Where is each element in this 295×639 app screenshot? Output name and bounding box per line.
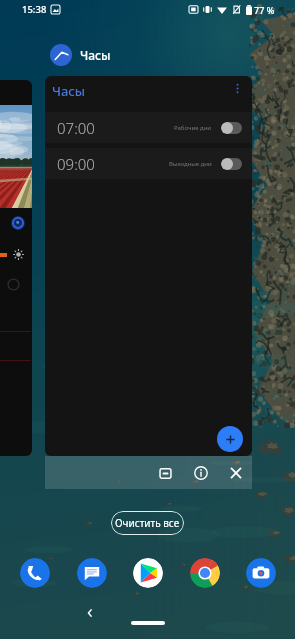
button[interactable]: Camera	[246, 558, 276, 588]
staticText: 09:00	[57, 154, 95, 174]
button[interactable]: Очистить все	[111, 511, 184, 535]
button[interactable]: Split screen	[154, 462, 176, 484]
button[interactable]: 07:00	[45, 112, 252, 143]
button[interactable]: Close app	[225, 462, 247, 484]
button[interactable]: Recent app	[0, 80, 32, 456]
button[interactable]: Add alarm	[217, 426, 243, 452]
button[interactable]: Chrome	[190, 558, 220, 588]
button[interactable]: More options	[227, 78, 247, 98]
button[interactable]: Messages	[77, 558, 107, 588]
staticText: 15:38	[22, 3, 47, 16]
button[interactable]: Toggle alarm	[221, 158, 242, 170]
staticText: Часы	[52, 82, 86, 100]
button[interactable]: Back	[78, 601, 102, 625]
staticText: Очистить все	[115, 516, 180, 530]
button[interactable]: Часы	[45, 76, 252, 456]
button[interactable]: Toggle alarm	[221, 122, 242, 134]
staticText: Рабочие дни	[174, 124, 212, 132]
staticText: Выходные дни	[169, 160, 212, 168]
button[interactable]: Home	[131, 621, 165, 625]
staticText: 07:00	[57, 118, 95, 138]
button[interactable]: Phone	[20, 558, 50, 588]
button[interactable]: App info	[190, 462, 212, 484]
staticText: Часы	[80, 47, 111, 63]
button[interactable]: 09:00	[45, 148, 252, 179]
staticText: 77 %	[254, 4, 275, 16]
button[interactable]: Play Store	[133, 558, 163, 588]
